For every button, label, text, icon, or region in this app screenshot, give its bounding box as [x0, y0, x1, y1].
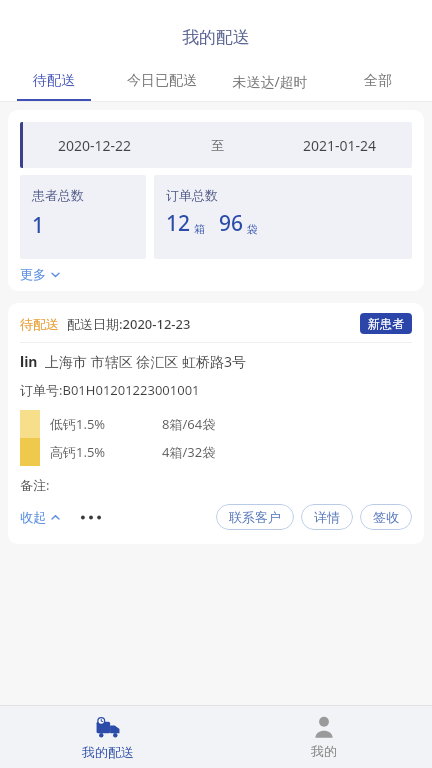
staticText: 箱: [194, 222, 205, 236]
staticText: 我的配送: [82, 744, 134, 760]
staticText: 2021-01-24: [303, 136, 377, 155]
staticText: 12: [166, 209, 191, 238]
staticText: 待配送: [33, 72, 75, 90]
staticText: 高钙1.5%: [50, 443, 106, 461]
staticText: 全部: [364, 72, 392, 90]
staticText: 我的: [311, 743, 337, 759]
button[interactable]: 更多: [20, 263, 61, 285]
staticText: 96: [219, 209, 244, 238]
staticText: 2020-12-22: [58, 136, 132, 155]
button[interactable]: 订单总数: [154, 175, 412, 259]
button[interactable]: 签收: [360, 504, 412, 530]
staticText: 订单号:B01H01201223001001: [20, 381, 200, 399]
button[interactable]: More options: [77, 507, 105, 528]
button[interactable]: My deliveries: [0, 706, 216, 768]
staticText: 至: [211, 137, 224, 153]
staticText: 袋: [247, 222, 258, 236]
staticText: 新患者: [368, 316, 404, 331]
staticText: 待配送: [20, 316, 59, 332]
staticText: 未送达/超时: [232, 72, 308, 91]
button[interactable]: 收起: [20, 509, 61, 525]
other: Profile: [312, 715, 336, 739]
button[interactable]: 今日已配送: [108, 60, 216, 102]
button[interactable]: Profile: [216, 706, 432, 768]
staticText: 备注:: [20, 476, 50, 494]
staticText: 详情: [314, 509, 340, 525]
staticText: 今日已配送: [127, 72, 197, 90]
staticText: 8箱/64袋: [162, 415, 216, 433]
staticText: 签收: [373, 509, 399, 525]
button[interactable]: 详情: [301, 504, 353, 530]
staticText: 订单总数: [166, 187, 218, 203]
staticText: 患者总数: [32, 187, 84, 203]
staticText: 1: [32, 211, 45, 240]
button[interactable]: 2020-12-22: [20, 122, 412, 168]
button[interactable]: 联系客户: [216, 504, 294, 530]
button[interactable]: 新患者: [360, 313, 412, 334]
staticText: 我的配送: [182, 27, 250, 48]
other: My deliveries: [95, 714, 121, 740]
staticText: 配送日期:2020-12-23: [67, 315, 191, 333]
staticText: 上海市 市辖区 徐汇区 虹桥路3号: [45, 352, 246, 371]
button[interactable]: 未送达/超时: [216, 60, 324, 102]
button[interactable]: 全部: [324, 60, 432, 102]
staticText: lin: [20, 352, 38, 371]
staticText: 低钙1.5%: [50, 415, 106, 433]
staticText: 更多: [20, 266, 46, 282]
staticText: 4箱/32袋: [162, 443, 216, 461]
staticText: 收起: [20, 509, 46, 525]
button[interactable]: 待配送: [0, 60, 108, 102]
button[interactable]: 患者总数: [20, 175, 146, 259]
staticText: 联系客户: [229, 509, 281, 525]
